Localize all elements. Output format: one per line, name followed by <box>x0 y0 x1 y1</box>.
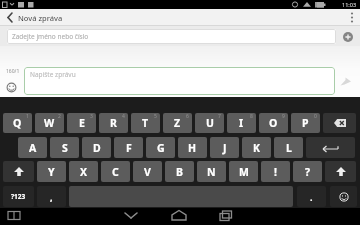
button[interactable]: P <box>291 113 320 133</box>
button[interactable]: G <box>146 137 175 158</box>
staticText: 4 <box>122 113 125 120</box>
staticText: N <box>207 165 216 179</box>
staticText: E <box>79 116 85 130</box>
staticText: Z <box>174 116 181 130</box>
button[interactable]: X <box>69 161 98 182</box>
staticText: T <box>142 116 149 130</box>
button[interactable] <box>306 137 355 158</box>
button[interactable]: , <box>37 186 66 207</box>
button[interactable] <box>6 82 17 93</box>
staticText: . <box>310 191 313 203</box>
staticText: 7 <box>218 113 221 120</box>
button[interactable]: C <box>101 161 130 182</box>
button[interactable]: S <box>50 137 79 158</box>
staticText: B <box>176 165 183 179</box>
button[interactable] <box>214 208 240 225</box>
button[interactable] <box>323 113 356 133</box>
button[interactable]: Napište zprávu <box>24 67 335 95</box>
staticText: D <box>93 141 101 155</box>
staticText: G <box>157 141 165 155</box>
staticText: U <box>206 116 214 130</box>
staticText: I <box>239 116 244 130</box>
button[interactable]: N <box>197 161 226 182</box>
button[interactable]: . <box>297 186 326 207</box>
staticText: 8 <box>250 113 253 120</box>
staticText: O <box>269 116 278 130</box>
button[interactable] <box>118 208 144 225</box>
staticText: H <box>188 141 197 155</box>
button[interactable] <box>340 77 352 86</box>
staticText: K <box>253 141 260 155</box>
button[interactable]: T <box>131 113 160 133</box>
button[interactable]: ?123 <box>3 186 34 207</box>
staticText: 1 <box>26 113 29 120</box>
button[interactable]: O <box>259 113 288 133</box>
button[interactable]: Y <box>37 161 66 182</box>
button[interactable]: F <box>114 137 143 158</box>
button[interactable]: Zadejte jméno nebo číslo <box>7 29 336 44</box>
button[interactable]: Z <box>163 113 192 133</box>
button[interactable]: A <box>18 137 47 158</box>
button[interactable] <box>325 161 356 182</box>
button[interactable]: K <box>242 137 271 158</box>
staticText: 5 <box>154 113 157 120</box>
staticText: P <box>302 116 309 130</box>
button[interactable]: U <box>195 113 224 133</box>
button[interactable]: ! <box>261 161 290 182</box>
button[interactable]: D <box>82 137 111 158</box>
button[interactable]: V <box>133 161 162 182</box>
button[interactable]: J <box>210 137 239 158</box>
staticText: X <box>80 165 88 179</box>
button[interactable] <box>330 186 357 207</box>
staticText: Q <box>13 116 22 130</box>
staticText: 0 <box>314 113 317 120</box>
button[interactable]: H <box>178 137 207 158</box>
button[interactable]: I <box>227 113 256 133</box>
staticText: , <box>50 191 53 203</box>
button[interactable]: R <box>99 113 128 133</box>
button[interactable]: ? <box>293 161 322 182</box>
staticText: Y <box>48 165 55 179</box>
staticText: R <box>110 116 117 130</box>
button[interactable]: B <box>165 161 194 182</box>
button[interactable]: L <box>274 137 303 158</box>
staticText: 3 <box>90 113 93 120</box>
staticText: ?123 <box>11 192 26 201</box>
staticText: 2 <box>58 113 61 120</box>
staticText: Napište zprávu <box>30 70 76 79</box>
staticText: C <box>112 165 119 179</box>
button[interactable] <box>166 208 192 225</box>
staticText: ? <box>305 165 311 179</box>
staticText: W <box>44 116 55 130</box>
staticText: J <box>223 141 227 155</box>
button[interactable] <box>3 161 34 182</box>
staticText: 11:03 <box>342 1 357 8</box>
staticText: M <box>239 165 249 179</box>
button[interactable]: E <box>67 113 96 133</box>
staticText: Zadejte jméno nebo číslo <box>12 32 89 41</box>
staticText: S <box>62 141 68 155</box>
staticText: L <box>286 141 292 155</box>
staticText: A <box>29 141 37 155</box>
staticText: 160/1 <box>6 68 20 75</box>
staticText: Nová zpráva <box>18 13 63 23</box>
staticText: 9 <box>282 113 285 120</box>
button[interactable]: M <box>229 161 258 182</box>
button[interactable]: W <box>35 113 64 133</box>
staticText: 6 <box>186 113 189 120</box>
staticText: F <box>126 141 132 155</box>
staticText: V <box>144 165 151 179</box>
button[interactable] <box>343 32 353 42</box>
button[interactable]: Q <box>3 113 32 133</box>
staticText: ! <box>274 165 277 179</box>
